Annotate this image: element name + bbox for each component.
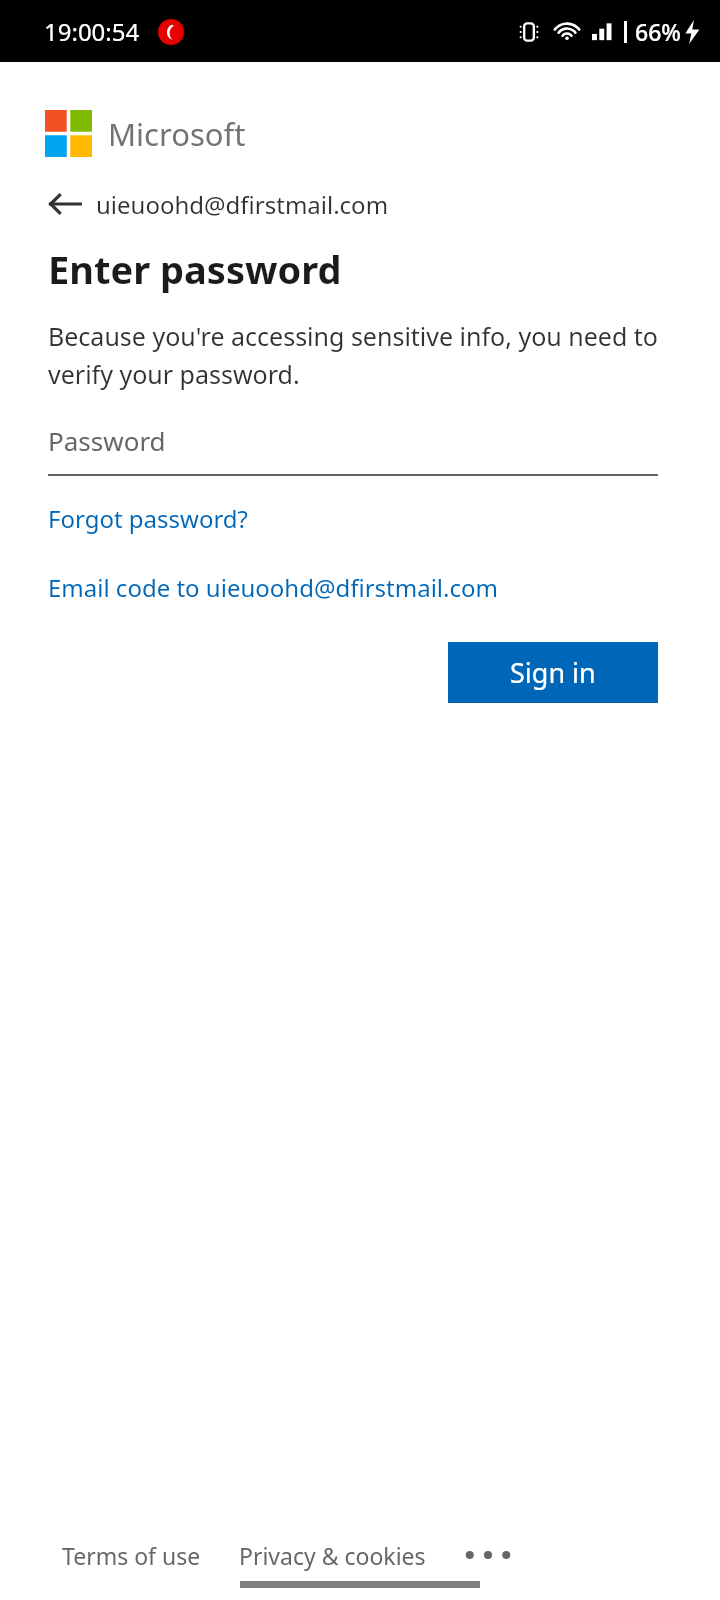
- button[interactable]: Sign in: [448, 642, 658, 703]
- staticText: Email code to uieuoohd@dfirstmail.com: [48, 571, 498, 604]
- button[interactable]: Terms of use: [62, 1540, 201, 1571]
- staticText: Enter password: [48, 243, 342, 295]
- staticText: Terms of use: [62, 1540, 201, 1571]
- button[interactable]: Email code to uieuoohd@dfirstmail.com: [48, 571, 498, 604]
- staticText: Privacy & cookies: [239, 1540, 426, 1571]
- button[interactable]: Back: [48, 187, 389, 221]
- staticText: Password: [48, 423, 166, 458]
- staticText: Microsoft: [108, 113, 246, 155]
- other: Microsoft: [45, 110, 246, 157]
- button[interactable]: Privacy & cookies: [239, 1540, 426, 1571]
- staticText: 66%: [635, 16, 681, 47]
- staticText: uieuoohd@dfirstmail.com: [96, 188, 389, 221]
- staticText: Forgot password?: [48, 502, 249, 535]
- staticText: Sign in: [510, 654, 596, 691]
- other: Back: [48, 187, 82, 221]
- button[interactable]: Forgot password?: [48, 502, 249, 535]
- staticText: Because you're accessing sensitive info,…: [48, 319, 658, 391]
- staticText: 19:00:54: [44, 15, 140, 48]
- button[interactable]: More options: [460, 1538, 516, 1572]
- button[interactable]: Password: [48, 423, 658, 476]
